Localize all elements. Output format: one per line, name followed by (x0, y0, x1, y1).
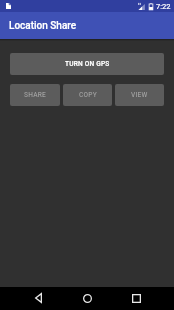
staticText: VIEW (131, 91, 148, 99)
staticText: COPY (79, 91, 97, 99)
staticText: Location Share (9, 20, 77, 32)
button[interactable]: VIEW (115, 84, 164, 106)
button[interactable]: Recent apps (124, 287, 149, 309)
staticText: TURN ON GPS (65, 60, 110, 68)
button[interactable]: Home (75, 287, 100, 309)
button[interactable]: COPY (63, 84, 112, 106)
button[interactable]: SHARE (10, 84, 60, 106)
button[interactable]: Back (26, 287, 51, 309)
staticText: 7:22 (156, 2, 171, 11)
staticText: SHARE (24, 91, 46, 99)
button[interactable]: TURN ON GPS (10, 53, 164, 75)
